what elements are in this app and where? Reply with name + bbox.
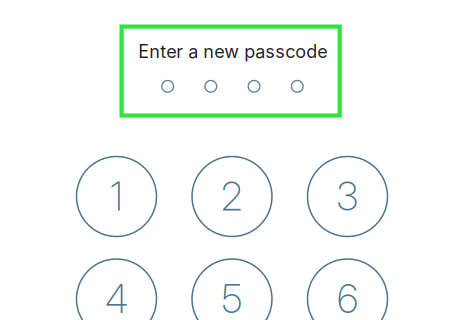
staticText: 5 xyxy=(221,276,242,320)
button[interactable]: 4 xyxy=(76,259,156,320)
button[interactable]: 5 xyxy=(192,259,272,320)
button[interactable]: 1 xyxy=(76,156,156,236)
staticText: 3 xyxy=(336,173,358,220)
staticText: 6 xyxy=(337,276,358,320)
button[interactable]: 6 xyxy=(307,259,387,320)
staticText: 1 xyxy=(110,173,123,220)
button[interactable]: 2 xyxy=(192,156,272,236)
staticText: Enter a new passcode xyxy=(138,41,327,62)
staticText: 2 xyxy=(221,173,243,220)
staticText: 4 xyxy=(105,276,128,320)
button[interactable]: 3 xyxy=(307,156,387,236)
